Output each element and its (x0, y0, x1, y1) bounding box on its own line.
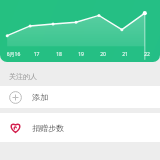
staticText: 6月16 (2, 51, 25, 58)
staticText: 20 (92, 51, 114, 58)
staticText: 19 (70, 51, 92, 58)
staticText: 添加 (32, 92, 48, 102)
button[interactable]: 捐赠步数 (0, 113, 160, 142)
staticText: 22 (136, 51, 158, 58)
staticText: 21 (114, 51, 136, 58)
staticText: 18 (48, 51, 70, 58)
button[interactable]: Step history chart (0, 0, 160, 62)
staticText: 捐赠步数 (32, 123, 64, 133)
button[interactable]: 添加 (0, 86, 160, 108)
staticText: 17 (25, 51, 48, 58)
staticText: 关注的人 (9, 72, 37, 81)
